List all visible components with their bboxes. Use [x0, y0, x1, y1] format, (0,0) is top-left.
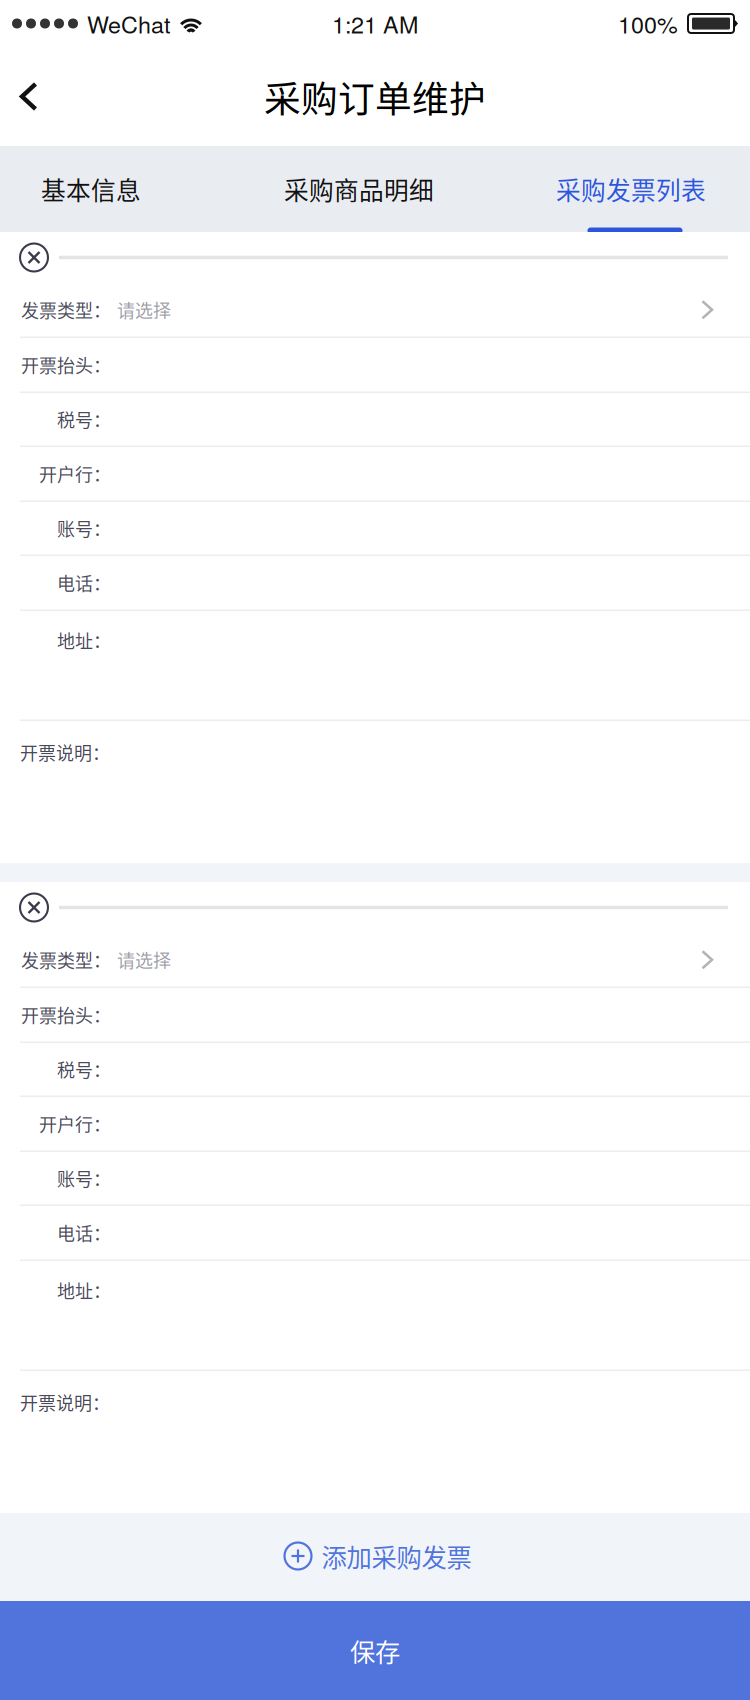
- staticText: 地址：: [57, 1277, 111, 1303]
- staticText: 100%: [618, 7, 678, 40]
- staticText: 采购商品明细: [284, 171, 434, 207]
- staticText: 开票抬头：: [21, 1002, 111, 1028]
- button[interactable]: 添加采购发票: [0, 1513, 750, 1601]
- staticText: 开户行：: [39, 461, 111, 487]
- staticText: 发票类型：: [21, 947, 111, 973]
- staticText: 添加采购发票: [321, 1538, 471, 1574]
- staticText: 采购订单维护: [264, 70, 486, 123]
- staticText: 电话：: [57, 570, 111, 596]
- button[interactable]: 返回: [0, 47, 57, 146]
- staticText: 开票抬头：: [21, 352, 111, 378]
- staticText: 账号：: [57, 515, 111, 541]
- staticText: 发票类型：: [21, 297, 111, 323]
- button[interactable]: 发票类型：: [0, 933, 750, 986]
- staticText: 开户行：: [39, 1111, 111, 1137]
- staticText: WeChat: [87, 7, 170, 40]
- button[interactable]: 删除发票: [20, 243, 48, 271]
- button[interactable]: 发票类型：: [0, 283, 750, 336]
- staticText: 基本信息: [41, 171, 141, 207]
- staticText: 开票说明：: [20, 1389, 110, 1415]
- staticText: 开票说明：: [20, 739, 110, 765]
- button[interactable]: 保存: [0, 1601, 750, 1700]
- staticText: 1:21 AM: [332, 7, 418, 40]
- staticText: 税号：: [57, 406, 111, 432]
- button[interactable]: 采购商品明细: [244, 146, 474, 232]
- button[interactable]: 基本信息: [1, 146, 181, 232]
- button[interactable]: 删除发票: [20, 893, 48, 921]
- staticText: 电话：: [57, 1220, 111, 1246]
- staticText: 地址：: [57, 627, 111, 653]
- staticText: 请选择: [117, 947, 171, 973]
- staticText: 请选择: [117, 297, 171, 323]
- staticText: 采购发票列表: [556, 171, 706, 207]
- staticText: 账号：: [57, 1165, 111, 1191]
- button[interactable]: 采购发票列表: [521, 146, 749, 232]
- staticText: 保存: [350, 1632, 400, 1669]
- staticText: 税号：: [57, 1056, 111, 1082]
